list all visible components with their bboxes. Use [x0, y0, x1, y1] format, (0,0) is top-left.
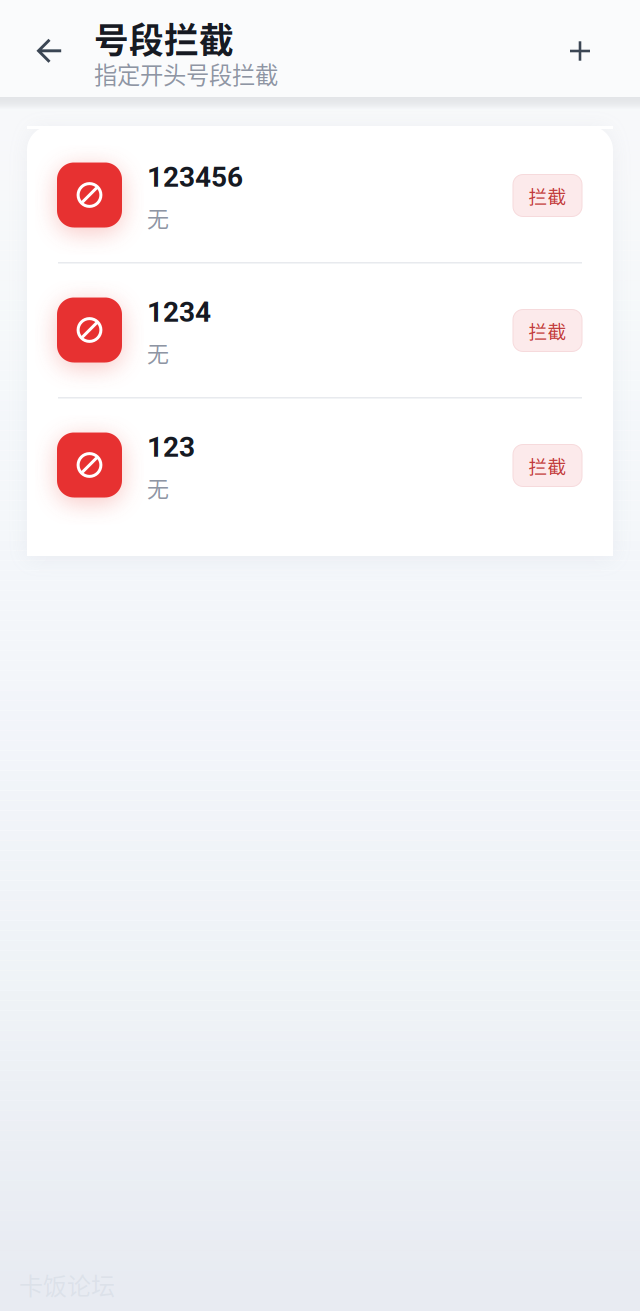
staticText: 无: [147, 471, 169, 503]
button[interactable]: Add: [543, 14, 617, 88]
button[interactable]: 1234: [27, 264, 613, 397]
staticText: 123: [147, 431, 195, 463]
staticText: 1234: [147, 296, 211, 328]
button[interactable]: 拦截: [513, 174, 582, 216]
staticText: 拦截: [528, 452, 566, 479]
button[interactable]: 123456: [27, 129, 613, 262]
button[interactable]: Back: [13, 14, 87, 88]
staticText: 无: [147, 336, 169, 368]
staticText: 号段拦截: [94, 13, 234, 63]
staticText: 123456: [147, 161, 243, 193]
button[interactable]: 拦截: [513, 309, 582, 351]
staticText: 拦截: [528, 182, 566, 209]
staticText: 拦截: [528, 317, 566, 344]
staticText: 卡饭论坛: [19, 1267, 115, 1302]
staticText: 无: [147, 201, 169, 233]
button[interactable]: 123: [27, 399, 613, 532]
button[interactable]: 拦截: [513, 444, 582, 486]
staticText: 指定开头号段拦截: [94, 57, 278, 91]
